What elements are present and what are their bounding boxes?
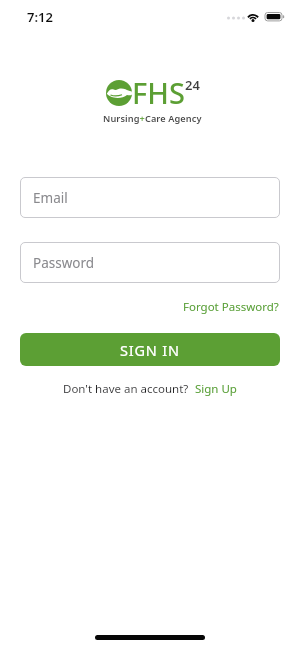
staticText: 7:12 bbox=[27, 8, 53, 26]
staticText: 24 bbox=[185, 76, 200, 94]
staticText: Password bbox=[33, 254, 95, 272]
staticText: FHS bbox=[132, 73, 185, 112]
button[interactable]: Email bbox=[20, 177, 280, 218]
button[interactable]: Forgot Password? bbox=[183, 299, 279, 315]
staticText: SIGN IN bbox=[120, 340, 180, 360]
staticText: Nursing+Care Agency bbox=[103, 112, 202, 125]
button[interactable]: SIGN IN bbox=[20, 333, 280, 366]
staticText: Email bbox=[33, 189, 68, 207]
button[interactable]: Password bbox=[20, 242, 280, 283]
button[interactable]: Sign Up bbox=[195, 381, 237, 397]
staticText: Don't have an account? bbox=[63, 381, 189, 397]
